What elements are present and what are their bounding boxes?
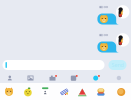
button[interactable]: Photos [27,75,33,80]
button[interactable]: App Store [93,75,100,81]
button[interactable]: More [117,76,121,80]
button[interactable]: Sticker pack [41,87,49,96]
button[interactable]: Contacts [7,76,12,80]
button[interactable]: Stickers [71,75,78,81]
button[interactable]: Note sticker [60,87,69,96]
button[interactable]: Lemon sticker [24,87,32,97]
button[interactable]: Orange sticker [117,88,125,96]
button[interactable]: Cat sticker [4,87,14,97]
button[interactable]: Message [2,60,104,70]
staticText: Send [111,61,123,69]
button[interactable]: Send [108,60,126,70]
button[interactable]: Taco sticker [97,87,105,96]
button[interactable]: Camera [49,75,57,81]
button[interactable]: Watermelon sticker [78,88,87,96]
